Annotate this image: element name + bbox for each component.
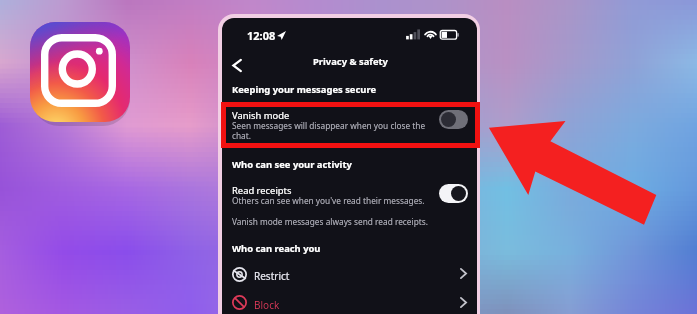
button[interactable] [222,111,477,145]
staticText: Seen messages will disappear when you cl… [232,120,426,131]
staticText: Privacy & safety [313,55,388,68]
button[interactable]: Toggle on [439,184,468,203]
button[interactable] [222,265,477,293]
staticText: Who can see your activity [232,158,352,171]
button[interactable] [222,185,477,213]
staticText: Read receipts [232,184,292,197]
staticText: Block [254,298,280,312]
staticText: Who can reach you [232,242,321,255]
staticText: Keeping your messages secure [232,83,377,96]
staticText: Restrict [254,269,290,283]
staticText: 12:08 [247,28,276,43]
staticText: Vanish mode [232,109,290,122]
button[interactable]: Toggle off [439,110,468,129]
button[interactable]: Back [223,51,251,79]
staticText: Others can see when you've read their me… [232,195,425,206]
staticText: chat. [232,130,251,141]
button[interactable] [222,293,477,314]
staticText: Vanish mode messages always send read re… [232,216,428,227]
